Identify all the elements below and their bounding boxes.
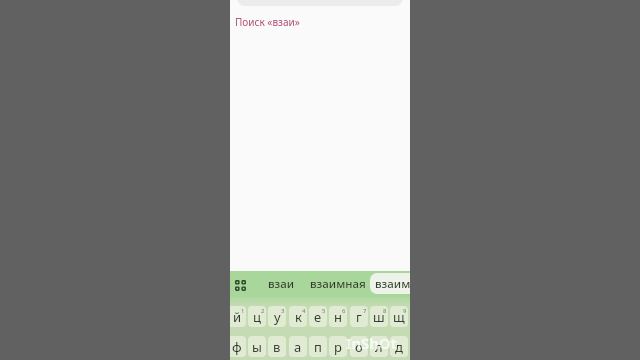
staticText: й (233, 308, 242, 326)
staticText: 3 (281, 307, 285, 315)
staticText: 7 (363, 307, 367, 315)
staticText: о (355, 338, 363, 356)
button[interactable]: щ (390, 306, 408, 327)
staticText: 4 (302, 307, 306, 315)
staticText: 5 (322, 307, 326, 315)
staticText: п (314, 338, 322, 356)
button[interactable]: ш (370, 306, 388, 327)
button[interactable]: взаимн (370, 273, 410, 294)
staticText: л (375, 338, 383, 356)
staticText: взаи (268, 276, 295, 292)
button[interactable]: о (350, 336, 368, 357)
button[interactable]: к (289, 306, 307, 327)
staticText: 1 (241, 307, 245, 315)
staticText: в (273, 338, 281, 356)
staticText: к (295, 308, 302, 326)
staticText: InShOt (346, 333, 397, 353)
button[interactable]: ы (248, 336, 266, 357)
staticText: у (274, 308, 281, 326)
staticText: ц (253, 308, 261, 326)
staticText: 9 (403, 307, 407, 315)
button[interactable]: Поиск «взаи» (235, 15, 300, 29)
button[interactable]: а (289, 336, 307, 357)
staticText: ф (232, 338, 242, 356)
staticText: р (334, 338, 342, 356)
staticText: 6 (342, 307, 346, 315)
staticText: г (356, 308, 362, 326)
button[interactable]: л (370, 336, 388, 357)
button[interactable]: в (268, 336, 286, 357)
button[interactable]: ц (248, 306, 266, 327)
staticText: е (314, 308, 322, 326)
staticText: взаимная (310, 276, 366, 292)
staticText: 2 (261, 307, 265, 315)
staticText: 8 (383, 307, 387, 315)
button[interactable]: взаимная (308, 271, 368, 297)
button[interactable]: у (268, 306, 286, 327)
staticText: взаимн (375, 276, 410, 292)
staticText: д (395, 338, 403, 356)
staticText: щ (393, 308, 405, 326)
staticText: н (334, 308, 342, 326)
button[interactable]: р (329, 336, 347, 357)
button[interactable]: взаи (263, 271, 299, 297)
staticText: а (294, 338, 302, 356)
button[interactable]: г (350, 306, 368, 327)
button[interactable]: ф (230, 336, 246, 357)
staticText: ш (373, 308, 385, 326)
button[interactable]: н (329, 306, 347, 327)
button[interactable]: п (309, 336, 327, 357)
button[interactable]: й (230, 306, 246, 327)
button[interactable]: д (390, 336, 408, 357)
staticText: ы (252, 338, 262, 356)
button[interactable]: е (309, 306, 327, 327)
button[interactable] (235, 280, 247, 292)
